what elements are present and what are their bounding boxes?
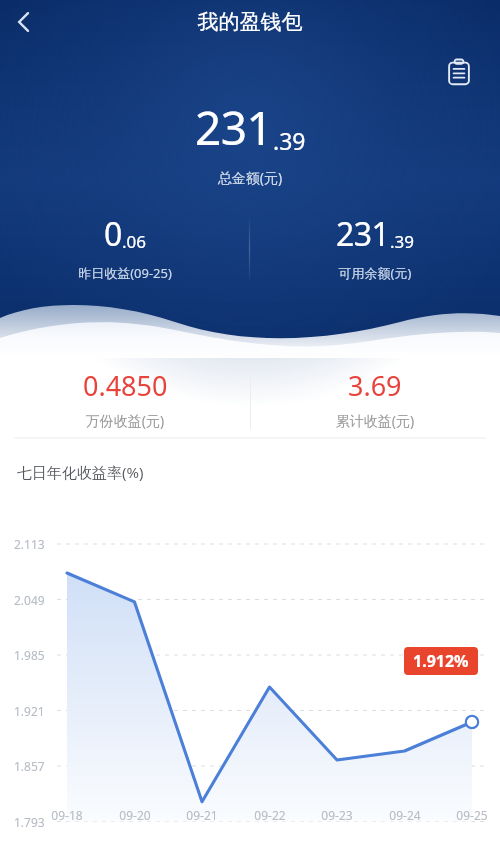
staticText: 1.921	[14, 703, 45, 719]
staticText: 231	[195, 96, 273, 159]
staticText: 我的盈钱包	[0, 9, 500, 35]
button[interactable]: 231	[250, 212, 500, 282]
staticText: 可用余额(元)	[250, 264, 500, 282]
staticText: 0.4850	[83, 367, 168, 404]
staticText: 3.69	[348, 367, 402, 404]
staticText: 1.857	[14, 758, 45, 774]
button[interactable]: 1.912%	[404, 647, 478, 675]
staticText: 1.985	[14, 647, 45, 663]
staticText: 09-20	[109, 807, 161, 823]
staticText: 09-23	[311, 807, 363, 823]
staticText: .39	[390, 230, 415, 253]
staticText: 2.049	[14, 592, 45, 608]
button[interactable]: 0.4850	[0, 358, 250, 430]
staticText: 09-22	[244, 807, 296, 823]
button[interactable]: Back	[0, 0, 48, 44]
staticText: 七日年化收益率(%)	[17, 462, 144, 482]
staticText: 09-25	[446, 807, 498, 823]
staticText: 万份收益(元)	[0, 411, 250, 430]
button[interactable]: 3.69	[250, 358, 500, 430]
staticText: 1.793	[14, 814, 45, 830]
staticText: 1.912%	[413, 650, 469, 672]
staticText: 2.113	[14, 536, 45, 552]
staticText: 累计收益(元)	[250, 411, 500, 430]
staticText: 09-21	[176, 807, 228, 823]
button[interactable]: 0	[0, 212, 250, 282]
staticText: 昨日收益(09-25)	[0, 264, 250, 282]
staticText: .06	[122, 230, 147, 253]
staticText: 231	[336, 212, 390, 256]
staticText: 总金额(元)	[0, 168, 500, 187]
staticText: .39	[273, 125, 306, 156]
staticText: 0	[104, 212, 122, 256]
staticText: 09-18	[41, 807, 93, 823]
button[interactable]: Records	[436, 49, 482, 95]
staticText: 09-24	[379, 807, 431, 823]
